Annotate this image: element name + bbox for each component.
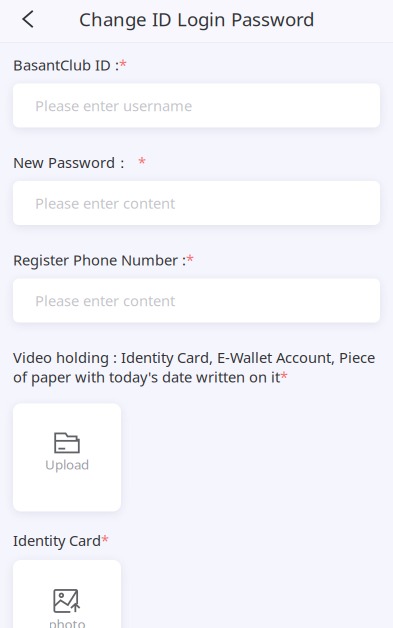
button[interactable]: Back (0, 0, 56, 38)
button[interactable]: Please enter username (13, 83, 380, 127)
button[interactable]: Please enter content (13, 278, 380, 322)
staticText: BasantClub ID :* (13, 55, 127, 74)
button[interactable]: photo (13, 560, 121, 628)
staticText: photo (48, 615, 85, 628)
staticText: New Password： * (13, 152, 146, 172)
staticText: Register Phone Number :* (13, 250, 194, 269)
button[interactable]: Upload (13, 403, 121, 511)
staticText: Upload (45, 455, 89, 473)
staticText: Please enter content (35, 193, 175, 213)
staticText: Video holding : Identity Card, E-Wallet … (13, 347, 375, 386)
staticText: Change ID Login Password (79, 7, 314, 31)
staticText: Please enter content (35, 291, 175, 310)
staticText: Identity Card* (13, 530, 109, 550)
staticText: Please enter username (35, 96, 192, 115)
button[interactable]: Please enter content (13, 181, 380, 225)
